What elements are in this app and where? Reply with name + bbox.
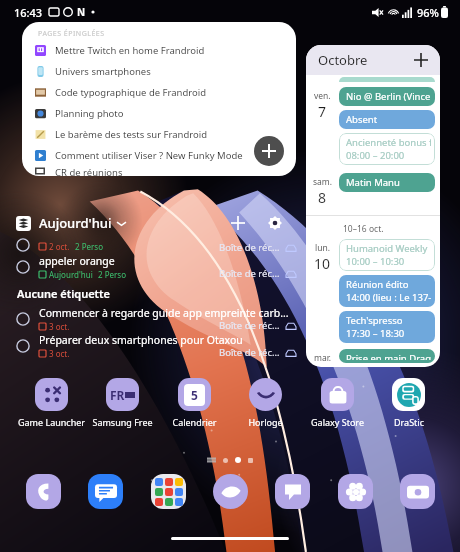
- staticText: Aujourd'hui: [49, 269, 93, 280]
- staticText: Univers smartphones: [55, 65, 151, 78]
- button[interactable]: Ancienneté bonus fi: [339, 133, 435, 165]
- staticText: 14:00 (lieu : Le 137-4: [346, 291, 431, 304]
- button[interactable]: Absent: [339, 110, 435, 129]
- staticText: Commencer à regarde guide app empreinte …: [39, 306, 289, 320]
- staticText: Boîte de réc…: [219, 319, 280, 332]
- staticText: Le barème des tests sur Frandroid: [55, 128, 208, 141]
- staticText: 16:43: [14, 5, 43, 20]
- button[interactable]: Réunion édito: [339, 275, 435, 307]
- button[interactable]: Téléphone: [24, 472, 62, 510]
- staticText: 7: [318, 102, 327, 121]
- button[interactable]: Internet: [211, 472, 249, 510]
- button[interactable]: Comment utiliser Viser ? New Funky Mode: [22, 145, 296, 166]
- button[interactable]: DraStic: [373, 378, 444, 428]
- button[interactable]: FR: [87, 378, 158, 428]
- button[interactable]: Appareil photo: [398, 472, 436, 510]
- button[interactable]: 5: [159, 378, 230, 428]
- staticText: Code typographique de Frandroid: [55, 86, 207, 99]
- staticText: Préparer deux smartphones pour Otaxou: [39, 333, 243, 347]
- staticText: 3 oct.: [49, 321, 70, 332]
- staticText: lun.: [315, 242, 330, 254]
- staticText: Réunion édito: [346, 278, 409, 291]
- button[interactable]: Ajouter: [254, 136, 284, 166]
- staticText: 17:30 – 18:30: [346, 327, 405, 340]
- staticText: Samsung Free: [92, 416, 153, 428]
- staticText: 2 Perso: [98, 269, 126, 280]
- button[interactable]: Code typographique de Frandroid: [22, 82, 296, 103]
- button[interactable]: Galerie: [336, 472, 374, 510]
- button[interactable]: Horloge: [230, 378, 301, 428]
- button[interactable]: Mettre Twitch en home Frandroid: [22, 40, 296, 61]
- staticText: Boîte de réc…: [219, 346, 280, 359]
- button[interactable]: Commencer à regarde guide app empreinte …: [16, 306, 296, 333]
- button[interactable]: Ajouter tâche: [227, 212, 249, 234]
- staticText: Mettre Twitch en home Frandroid: [55, 44, 205, 57]
- staticText: Galaxy Store: [311, 416, 364, 428]
- button[interactable]: Tech'spresso: [339, 311, 435, 343]
- staticText: Boîte de réc…: [219, 241, 280, 254]
- button[interactable]: Nio @ Berlin (Vincen: [339, 87, 435, 106]
- staticText: 10: [314, 254, 331, 273]
- staticText: Aujourd'hui: [39, 214, 112, 232]
- staticText: Prise en main Drag 3: [346, 352, 431, 360]
- button[interactable]: Planning photo: [22, 103, 296, 124]
- button[interactable]: Messages: [86, 472, 124, 510]
- staticText: Comment utiliser Viser ? New Funky Mode: [55, 149, 243, 162]
- staticText: Aucune étiquette: [17, 286, 110, 301]
- staticText: 8: [318, 188, 327, 207]
- button[interactable]: Ajouter événement: [412, 51, 430, 69]
- staticText: 96%: [417, 5, 439, 20]
- staticText: Octobre: [318, 51, 368, 69]
- button[interactable]: Galaxy Store: [302, 378, 373, 428]
- staticText: CR de réunions: [55, 166, 123, 176]
- staticText: appeler orange: [39, 254, 115, 268]
- staticText: 5: [191, 387, 198, 403]
- button[interactable]: Game Launcher: [16, 378, 87, 428]
- staticText: Game Launcher: [18, 416, 85, 428]
- button[interactable]: 2 oct.: [16, 238, 296, 254]
- staticText: mar.: [314, 352, 332, 364]
- button[interactable]: Univers smartphones: [22, 61, 296, 82]
- button[interactable]: Humanoid Weekly: [339, 239, 435, 271]
- staticText: 2 Perso: [75, 241, 103, 252]
- staticText: Nio @ Berlin (Vincen: [346, 90, 431, 103]
- staticText: 08:00 – 20:00: [346, 149, 405, 162]
- staticText: Calendrier: [172, 416, 217, 428]
- staticText: DraStic: [394, 416, 424, 428]
- staticText: Tech'spresso: [346, 314, 403, 327]
- button[interactable]: Paramètres: [264, 212, 286, 234]
- button[interactable]: Préparer deux smartphones pour Otaxou: [16, 333, 296, 360]
- staticText: Ancienneté bonus fi: [346, 136, 431, 149]
- staticText: N: [77, 5, 86, 19]
- button[interactable]: Notes: [273, 472, 311, 510]
- staticText: 10–16 oct.: [343, 223, 384, 235]
- button[interactable]: Prise en main Drag 3: [339, 349, 435, 363]
- staticText: 10:00 – 10:30: [346, 255, 405, 268]
- button[interactable]: Matin Manu: [339, 173, 435, 192]
- button[interactable]: CR de réunions: [22, 166, 296, 176]
- staticText: Absent: [346, 113, 378, 126]
- staticText: PAGES ÉPINGLÉES: [38, 29, 105, 39]
- button[interactable]: Google: [149, 472, 187, 510]
- button[interactable]: Octobre: [306, 45, 440, 75]
- staticText: Matin Manu: [346, 176, 400, 189]
- staticText: Boîte de réc…: [219, 267, 280, 280]
- staticText: Horloge: [248, 416, 283, 428]
- staticText: FR: [110, 387, 125, 403]
- staticText: Planning photo: [55, 107, 124, 120]
- staticText: 2 oct.: [49, 241, 70, 252]
- button[interactable]: Le barème des tests sur Frandroid: [22, 124, 296, 145]
- staticText: ven.: [314, 90, 331, 102]
- button[interactable]: appeler orange: [16, 254, 296, 281]
- staticText: 3 oct.: [49, 348, 70, 359]
- staticText: Humanoid Weekly: [346, 242, 428, 255]
- staticText: sam.: [313, 176, 333, 188]
